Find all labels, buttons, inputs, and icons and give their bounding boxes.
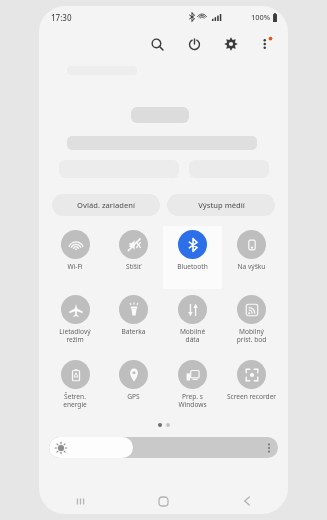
button[interactable]: Ovlád. zariadení	[52, 194, 160, 216]
button[interactable]: Mobilný príst. bod	[222, 291, 281, 354]
button[interactable]: Brightness	[49, 437, 278, 458]
button[interactable]: Brightness options	[260, 437, 278, 458]
button[interactable]: GPS	[104, 356, 163, 419]
button[interactable]: Baterka	[104, 291, 163, 354]
button[interactable]: Screen recorder	[222, 356, 281, 419]
staticText: 17:30	[51, 12, 72, 23]
button[interactable]: More options	[252, 30, 280, 58]
button[interactable]: Recents	[39, 488, 122, 514]
button[interactable]: Wi-Fi	[46, 226, 104, 289]
button[interactable]: Bluetooth	[163, 226, 222, 289]
button[interactable]: Prep. s Windows	[163, 356, 222, 419]
staticText: Šetren. energie	[46, 392, 104, 409]
staticText: Bluetooth	[163, 262, 222, 271]
staticText: Na výšku	[222, 262, 281, 271]
staticText: Screen recorder	[222, 392, 281, 401]
staticText: Mobilné dáta	[163, 327, 222, 344]
staticText: Lietadlový režim	[46, 327, 104, 344]
button[interactable]: Settings	[217, 30, 245, 58]
staticText: Stíšiť	[104, 262, 163, 271]
button[interactable]: Mobilné dáta	[163, 291, 222, 354]
staticText: Ovlád. zariadení	[77, 200, 135, 210]
button[interactable]: Stíšiť	[104, 226, 163, 289]
staticText: Prep. s Windows	[163, 392, 222, 409]
button[interactable]: Na výšku	[222, 226, 281, 289]
button[interactable]: Lietadlový režim	[46, 291, 104, 354]
button[interactable]: Šetren. energie	[46, 356, 104, 419]
staticText: Výstup médií	[198, 200, 245, 210]
button[interactable]: Search	[143, 30, 171, 58]
staticText: Mobilný príst. bod	[222, 327, 281, 344]
button[interactable]: Back	[205, 488, 288, 514]
button[interactable]: Power	[180, 30, 208, 58]
button[interactable]: Výstup médií	[167, 194, 275, 216]
staticText: Wi-Fi	[46, 262, 104, 271]
staticText: GPS	[104, 392, 163, 401]
button[interactable]: Home	[122, 488, 205, 514]
staticText: Baterka	[104, 327, 163, 336]
staticText: 100%	[251, 12, 271, 22]
